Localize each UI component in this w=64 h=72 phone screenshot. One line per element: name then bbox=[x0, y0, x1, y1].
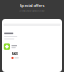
staticText: Lorem ipsum dolor sit amet consectetur bbox=[19, 10, 45, 12]
staticText: $43 bbox=[11, 51, 17, 56]
staticText: Special offers bbox=[19, 3, 44, 8]
